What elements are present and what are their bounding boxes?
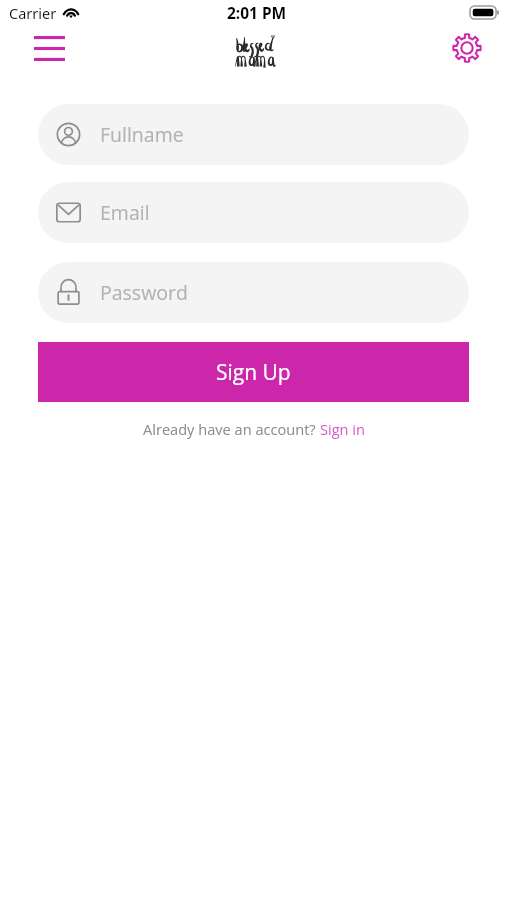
staticText: Fullname (100, 121, 184, 148)
button[interactable]: Sign in (320, 419, 365, 439)
staticText: Sign in (320, 419, 365, 439)
button[interactable]: Sign Up (38, 342, 469, 402)
button[interactable]: Email (38, 182, 469, 243)
button[interactable]: Settings (445, 26, 489, 70)
button[interactable]: Menu (27, 26, 71, 70)
staticText: Password (100, 279, 188, 306)
staticText: Sign Up (216, 358, 291, 387)
staticText: Email (100, 199, 150, 226)
staticText: Already have an account? (143, 419, 320, 439)
staticText: 2:01 PM (227, 2, 287, 23)
staticText: Carrier (9, 3, 57, 23)
button[interactable]: Fullname (38, 104, 469, 165)
button[interactable]: Password (38, 262, 469, 323)
